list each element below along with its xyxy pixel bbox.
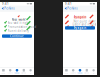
button[interactable]: Learn [7,68,14,75]
staticText: Home [64,72,68,74]
staticText: You said it right [8,21,30,25]
staticText: Try again [73,15,86,19]
button[interactable]: Home [0,68,7,75]
button[interactable]: Try again [65,26,95,30]
staticText: Home [1,72,5,74]
staticText: Speak [14,72,19,74]
staticText: Pronunciation good [8,25,37,29]
staticText: Words [21,72,26,74]
button[interactable]: Speak [14,68,20,75]
button[interactable]: Speak [77,68,83,75]
staticText: Me [30,72,32,74]
staticText: Listen and repeat [72,23,96,26]
staticText: Not quite right [73,20,95,23]
staticText: Perkins [67,7,77,10]
staticText: Perkins [4,7,14,10]
button[interactable]: Me [90,68,97,75]
staticText: Try again [73,26,86,30]
button[interactable]: Back to Perkins [1,6,15,11]
staticText: 9:41 [2,2,9,5]
button[interactable]: Continue [2,34,32,38]
staticText: Continue [10,34,24,38]
button[interactable]: Words [83,68,90,75]
staticText: Fluent delivery [8,29,29,33]
button[interactable]: Home [63,68,70,75]
button[interactable]: Back to Perkins [64,6,78,11]
staticText: Speak [77,72,82,74]
staticText: 9:41 [65,2,72,5]
button[interactable]: Words [20,68,27,75]
staticText: Words [84,72,89,74]
button[interactable]: Learn [70,68,77,75]
staticText: Nice work! [12,18,27,21]
staticText: Me [93,72,95,74]
button[interactable]: Me [27,68,34,75]
